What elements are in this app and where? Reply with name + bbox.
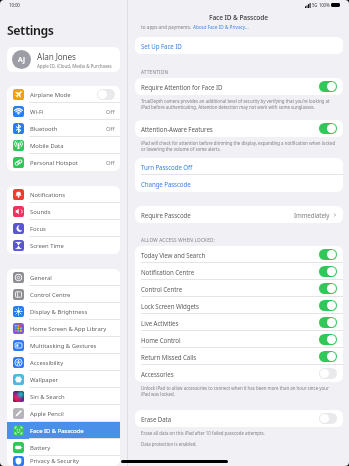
staticText: Notification Centre <box>141 268 319 276</box>
staticText: Lock Screen Widgets <box>141 302 319 310</box>
staticText: Change Passcode <box>141 180 337 188</box>
staticText: Unlock iPad to allow accessories to conn… <box>141 385 329 397</box>
button[interactable]: Control Centre <box>135 280 343 297</box>
staticText: Wi-Fi <box>30 108 106 116</box>
button[interactable]: Turn Passcode Off <box>135 158 343 175</box>
button[interactable]: Control Centre <box>7 286 120 303</box>
button[interactable]: Accessories <box>135 365 343 382</box>
staticText: Control Centre <box>141 285 319 293</box>
button[interactable]: Live Activities <box>135 314 343 331</box>
staticText: Display & Brightness <box>30 308 115 316</box>
button[interactable]: Wallpaper <box>7 371 120 388</box>
button[interactable]: Off <box>319 368 337 379</box>
button[interactable]: On <box>319 249 337 260</box>
button[interactable]: Home Control <box>135 331 343 348</box>
staticText: Erase all data on this iPad after 10 fai… <box>141 430 265 436</box>
staticText: Home Control <box>141 336 319 344</box>
staticText: Accessories <box>141 370 319 378</box>
staticText: Off <box>106 125 115 133</box>
button[interactable]: On <box>319 81 337 92</box>
staticText: Immediately <box>294 211 330 219</box>
staticText: Set Up Face ID <box>141 42 337 50</box>
button[interactable]: Off <box>319 413 337 424</box>
button[interactable]: Require Attention for Face ID <box>135 78 343 95</box>
button[interactable]: On <box>319 300 337 311</box>
staticText: Apple ID, iCloud, Media & Purchases <box>37 63 112 69</box>
staticText: Data protection is enabled. <box>141 441 197 447</box>
staticText: 10:00 <box>9 2 20 8</box>
button[interactable]: Off <box>97 89 115 100</box>
staticText: 5G <box>312 2 318 8</box>
button[interactable]: Focus <box>7 220 120 237</box>
button[interactable]: Notifications <box>7 186 120 203</box>
staticText: Screen Time <box>30 242 115 250</box>
staticText: Notifications <box>30 191 115 199</box>
button[interactable]: Require Passcode <box>135 206 343 223</box>
staticText: to apps and payments. <box>141 24 193 30</box>
button[interactable]: Display & Brightness <box>7 303 120 320</box>
button[interactable]: General <box>7 269 120 286</box>
button[interactable]: Siri & Search <box>7 388 120 405</box>
button[interactable]: Screen Time <box>7 237 120 254</box>
staticText: General <box>30 274 115 282</box>
staticText: ALLOW ACCESS WHEN LOCKED: <box>141 237 216 243</box>
staticText: Airplane Mode <box>30 91 97 99</box>
button[interactable]: Erase Data <box>135 410 343 427</box>
button[interactable]: Set Up Face ID <box>135 37 343 54</box>
staticText: AJ <box>18 55 25 65</box>
staticText: Personal Hotspot <box>30 159 106 167</box>
button[interactable]: Personal Hotspot <box>7 154 120 171</box>
staticText: Require Passcode <box>141 211 294 219</box>
button[interactable]: On <box>319 123 337 134</box>
button[interactable]: Wi-Fi <box>7 103 120 120</box>
staticText: Turn Passcode Off <box>141 163 337 171</box>
staticText: Battery <box>30 444 115 452</box>
button[interactable]: On <box>319 334 337 345</box>
staticText: Require Attention for Face ID <box>141 83 319 91</box>
staticText: Face ID & Passcode <box>209 13 268 22</box>
button[interactable]: Mobile Data <box>7 137 120 154</box>
staticText: Bluetooth <box>30 125 106 133</box>
button[interactable]: On <box>319 351 337 362</box>
button[interactable]: Accessibility <box>7 354 120 371</box>
button[interactable]: On <box>319 266 337 277</box>
staticText: Sounds <box>30 208 115 216</box>
button[interactable]: Apple Pencil <box>7 405 120 422</box>
button[interactable]: Sounds <box>7 203 120 220</box>
staticText: Home Screen & App Library <box>30 325 115 333</box>
button[interactable]: Return Missed Calls <box>135 348 343 365</box>
button[interactable]: Battery <box>7 439 120 456</box>
staticText: Face ID & Passcode <box>30 427 115 435</box>
staticText: ATTENTION <box>141 69 169 75</box>
button[interactable]: On <box>319 283 337 294</box>
button[interactable]: Today View and Search <box>135 246 343 263</box>
staticText: Focus <box>30 225 115 233</box>
button[interactable]: Change Passcode <box>135 175 343 192</box>
button[interactable]: On <box>319 317 337 328</box>
button[interactable]: Attention-Aware Features <box>135 120 343 137</box>
staticText: Control Centre <box>30 291 115 299</box>
staticText: iPad will check for attention before dim… <box>141 140 336 152</box>
button[interactable]: Face ID & Passcode <box>7 422 120 439</box>
staticText: TrueDepth camera provides an additional … <box>141 98 330 110</box>
staticText: Privacy & Security <box>30 457 115 465</box>
button[interactable]: Multitasking & Gestures <box>7 337 120 354</box>
staticText: Live Activities <box>141 319 319 327</box>
button[interactable]: Home Screen & App Library <box>7 320 120 337</box>
staticText: Apple Pencil <box>30 410 115 418</box>
staticText: Accessibility <box>30 359 115 367</box>
staticText: Off <box>106 108 115 116</box>
staticText: Attention-Aware Features <box>141 125 319 133</box>
staticText: Multitasking & Gestures <box>30 342 115 350</box>
staticText: Today View and Search <box>141 251 319 259</box>
button[interactable]: Bluetooth <box>7 120 120 137</box>
staticText: Return Missed Calls <box>141 353 319 361</box>
button[interactable]: Airplane Mode <box>7 86 120 103</box>
button[interactable]: AJ <box>7 47 120 72</box>
staticText: Mobile Data <box>30 142 115 150</box>
button[interactable]: Notification Centre <box>135 263 343 280</box>
staticText: Alan Jones <box>37 51 76 62</box>
staticText: 100% <box>319 2 330 8</box>
button[interactable]: Privacy & Security <box>7 456 120 466</box>
button[interactable]: Lock Screen Widgets <box>135 297 343 314</box>
